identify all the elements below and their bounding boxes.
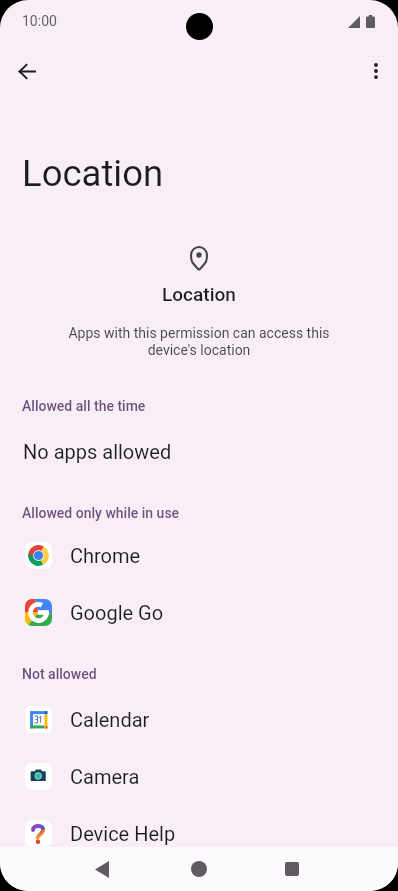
staticText: Calendar <box>70 708 150 731</box>
staticText: Allowed all the time <box>22 398 146 414</box>
staticText: Camera <box>70 765 140 788</box>
staticText: 10:00 <box>22 13 57 29</box>
button[interactable]: Calendar <box>0 691 398 748</box>
staticText: Allowed only while in use <box>22 505 180 521</box>
staticText: Google Go <box>70 601 164 624</box>
button[interactable]: Chrome <box>0 527 398 584</box>
button[interactable]: Recent apps <box>264 847 320 891</box>
button[interactable]: Home <box>171 847 227 891</box>
button[interactable]: Navigate up <box>7 51 47 91</box>
button[interactable]: More options <box>356 51 396 91</box>
button[interactable]: Google Go <box>0 584 398 641</box>
staticText: Device Help <box>70 822 176 845</box>
staticText: Not allowed <box>22 666 97 682</box>
staticText: Location <box>162 283 236 305</box>
staticText: Chrome <box>70 544 141 567</box>
button[interactable]: Camera <box>0 748 398 805</box>
button[interactable]: Back <box>74 847 130 891</box>
staticText: Location <box>22 152 164 195</box>
button[interactable]: Device Help <box>0 805 398 862</box>
staticText: Apps with this permission can access thi… <box>68 325 330 359</box>
staticText: No apps allowed <box>23 440 172 463</box>
